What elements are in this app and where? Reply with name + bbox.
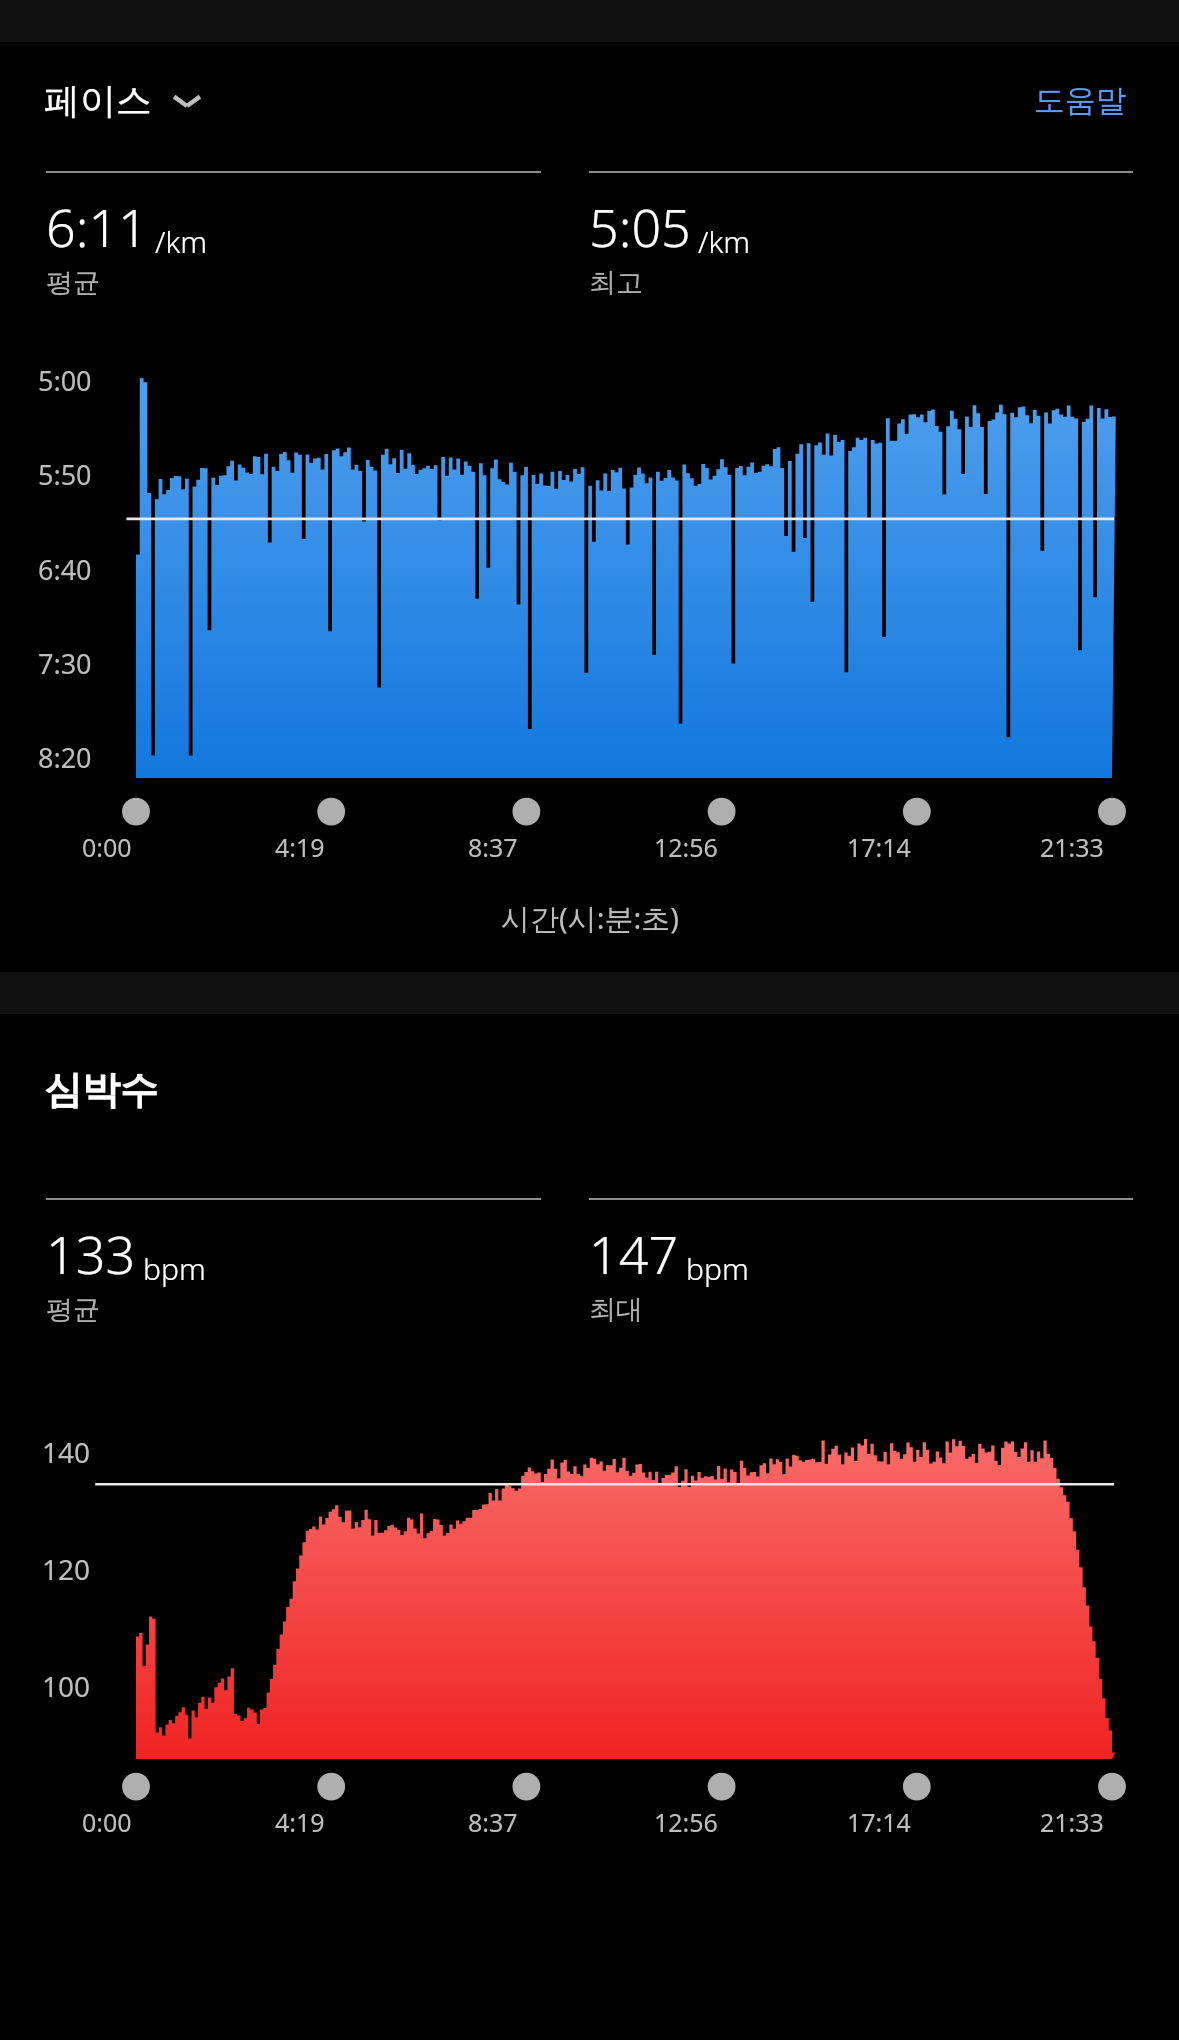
staticText: 120 <box>42 1550 91 1588</box>
staticText: 7:30 <box>38 645 92 682</box>
staticText: 최대 <box>589 1293 643 1327</box>
staticText: 21:33 <box>1040 1805 1104 1839</box>
staticText: 8:37 <box>468 1805 518 1839</box>
staticText: bpm <box>686 1248 749 1289</box>
staticText: /km <box>698 221 751 262</box>
staticText: 17:14 <box>847 830 911 864</box>
staticText: 6:11 <box>46 191 148 262</box>
button[interactable]: 페이스 <box>44 72 204 129</box>
staticText: 도움말 <box>1034 81 1127 120</box>
staticText: 4:19 <box>275 830 325 864</box>
staticText: 6:40 <box>38 551 92 588</box>
staticText: /km <box>155 221 208 262</box>
staticText: 5:50 <box>38 456 92 493</box>
staticText: 133 <box>46 1218 136 1289</box>
staticText: 100 <box>42 1667 91 1705</box>
staticText: 12:56 <box>654 1805 718 1839</box>
button[interactable]: 도움말 <box>1026 73 1135 128</box>
staticText: 5:00 <box>38 362 92 399</box>
other: Expand <box>170 91 204 111</box>
staticText: 0:00 <box>82 1805 132 1839</box>
staticText: 140 <box>42 1433 91 1471</box>
staticText: 8:37 <box>468 830 518 864</box>
staticText: 시간(시:분:초) <box>501 898 679 938</box>
staticText: 심박수 <box>44 1066 158 1114</box>
staticText: 21:33 <box>1040 830 1104 864</box>
staticText: 페이스 <box>44 78 152 123</box>
staticText: 5:05 <box>589 191 691 262</box>
staticText: 0:00 <box>82 830 132 864</box>
staticText: 최고 <box>589 266 643 300</box>
staticText: 평균 <box>46 266 100 300</box>
staticText: 12:56 <box>654 830 718 864</box>
staticText: bpm <box>143 1248 206 1289</box>
staticText: 147 <box>589 1218 679 1289</box>
staticText: 17:14 <box>847 1805 911 1839</box>
staticText: 4:19 <box>275 1805 325 1839</box>
staticText: 8:20 <box>38 739 92 776</box>
staticText: 평균 <box>46 1293 100 1327</box>
